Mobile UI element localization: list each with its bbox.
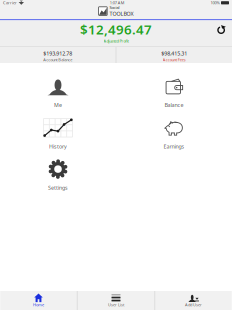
- staticText: Account Balance: [43, 57, 72, 62]
- button[interactable]: Home: [0, 291, 77, 310]
- staticText: Settings: [48, 184, 68, 191]
- button[interactable]: User List: [78, 291, 154, 310]
- staticText: Add User: [185, 302, 202, 307]
- staticText: Adjusted Profit: [103, 38, 128, 44]
- staticText: $193,912.78: [43, 50, 72, 57]
- staticText: Balance: [164, 101, 183, 109]
- button[interactable]: Add User: [155, 291, 232, 310]
- staticText: History: [49, 143, 67, 150]
- button[interactable]: History: [0, 118, 116, 160]
- button[interactable]: Me: [0, 77, 116, 118]
- staticText: Account Fees: [163, 57, 186, 62]
- button[interactable]: Refresh: [212, 20, 230, 46]
- staticText: User List: [108, 302, 124, 307]
- staticText: $12,496.47: [80, 20, 152, 38]
- staticText: Carrier: [3, 0, 17, 5]
- staticText: 100%: [211, 0, 220, 5]
- staticText: Social: [109, 5, 119, 10]
- staticText: TOOLBOX: [109, 10, 133, 17]
- button[interactable]: Balance: [116, 77, 232, 118]
- staticText: $98,415.31: [161, 50, 187, 57]
- staticText: 1:07 AM: [110, 0, 125, 5]
- button[interactable]: Settings: [0, 160, 116, 201]
- button[interactable]: Earnings: [116, 118, 232, 160]
- staticText: Earnings: [163, 143, 184, 150]
- staticText: Home: [33, 302, 44, 307]
- staticText: Me: [54, 101, 62, 109]
